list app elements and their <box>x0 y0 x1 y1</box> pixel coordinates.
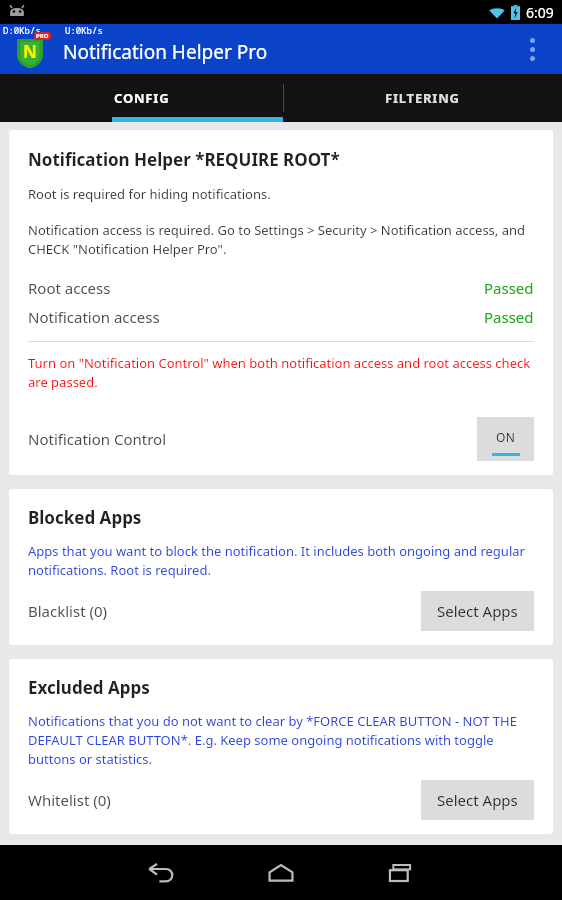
staticText: ON <box>496 429 516 445</box>
staticText: Excluded Apps <box>28 676 150 699</box>
staticText: Notification Control <box>28 429 477 449</box>
staticText: Root access <box>28 278 484 298</box>
staticText: Turn on "Notification Control" when both… <box>28 354 534 391</box>
staticText: CONFIG <box>114 89 170 107</box>
staticText: Blocked Apps <box>28 506 142 529</box>
staticText: Root is required for hiding notification… <box>28 185 271 203</box>
staticText: FILTERING <box>385 89 460 107</box>
staticText: Notification Helper Pro <box>63 39 268 65</box>
button[interactable]: More options <box>508 25 556 73</box>
staticText: PRO <box>36 32 49 40</box>
staticText: N <box>23 40 37 63</box>
staticText: Select Apps <box>437 601 518 621</box>
staticText: Passed <box>484 278 534 298</box>
staticText: Notification access <box>28 307 484 327</box>
staticText: Notification access is required. Go to S… <box>28 221 534 258</box>
staticText: 6:09 <box>526 3 554 22</box>
staticText: Passed <box>484 307 534 327</box>
staticText: Blacklist (0) <box>28 601 421 621</box>
staticText: Select Apps <box>437 790 518 810</box>
staticText: U:0Kb/s <box>65 24 103 36</box>
staticText: Notifications that you do not want to cl… <box>28 712 534 768</box>
staticText: Notification Helper *REQUIRE ROOT* <box>28 148 340 171</box>
button[interactable]: Home <box>226 845 336 900</box>
button[interactable]: Recent apps <box>346 845 456 900</box>
staticText: Apps that you want to block the notifica… <box>28 542 534 579</box>
button[interactable]: CONFIG <box>0 74 283 122</box>
button[interactable]: Select Apps <box>421 591 534 631</box>
button[interactable]: Back <box>106 845 216 900</box>
button[interactable]: Select Apps <box>421 780 534 820</box>
staticText: Whitelist (0) <box>28 790 421 810</box>
button[interactable]: FILTERING <box>283 74 562 122</box>
button[interactable]: ON <box>477 417 534 461</box>
staticText: D:0Kb/s <box>3 24 41 36</box>
